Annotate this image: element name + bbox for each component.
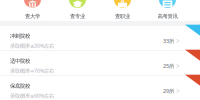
staticText: 录取概率≈70%左右 xyxy=(10,67,54,74)
staticText: 适中院校 xyxy=(10,58,30,64)
button[interactable]: 查大学 xyxy=(10,0,55,21)
staticText: 查大学 xyxy=(25,13,40,20)
staticText: 录取概率≤30%左右 xyxy=(10,42,54,49)
button[interactable]: 适中院校 xyxy=(0,51,200,75)
button[interactable]: 查职业 xyxy=(100,0,145,21)
button[interactable]: 冲刺院校 xyxy=(0,26,200,50)
staticText: 冲刺院校 xyxy=(10,33,30,39)
staticText: 高考资讯 xyxy=(157,13,177,20)
staticText: 29所 xyxy=(163,87,174,95)
staticText: > xyxy=(176,87,180,95)
staticText: > xyxy=(176,62,180,70)
staticText: 保底院校 xyxy=(10,83,30,89)
staticText: 录取概率≥90%左右 xyxy=(10,92,54,99)
button[interactable]: 查专业 xyxy=(55,0,100,21)
staticText: 33所 xyxy=(163,37,174,45)
staticText: > xyxy=(176,37,180,45)
staticText: 查专业 xyxy=(70,13,85,20)
button[interactable]: 保底院校 xyxy=(0,76,200,100)
staticText: 查职业 xyxy=(115,13,130,20)
button[interactable]: 高考资讯 xyxy=(145,0,190,21)
staticText: 25所 xyxy=(163,62,174,70)
